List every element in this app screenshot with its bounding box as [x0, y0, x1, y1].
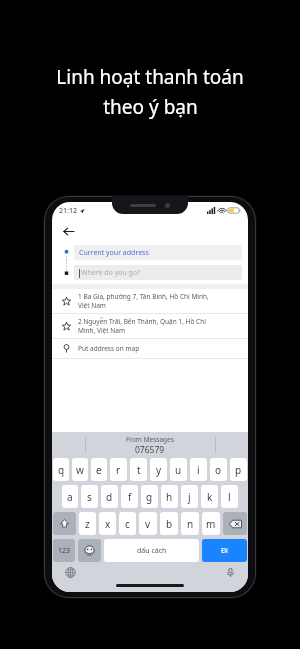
staticText: k — [207, 490, 213, 504]
button[interactable]: h — [161, 485, 178, 508]
button[interactable]: p — [230, 458, 247, 481]
staticText: g — [146, 490, 153, 504]
staticText: h — [166, 490, 173, 504]
staticText: Where do you go? — [81, 268, 141, 278]
button[interactable]: Change keyboard language — [63, 565, 77, 579]
button[interactable]: 123 — [53, 539, 75, 562]
button[interactable]: z — [79, 512, 96, 535]
button[interactable]: w — [72, 458, 88, 481]
staticText: q — [58, 463, 65, 477]
staticText: Minh, Việt Nam — [78, 326, 125, 335]
staticText: 21:12 — [59, 206, 77, 216]
button[interactable]: m — [202, 512, 220, 535]
staticText: l — [228, 490, 231, 504]
staticText: x — [105, 517, 111, 531]
staticText: Linh hoạt thanh toán — [56, 64, 244, 90]
button[interactable]: Shift — [53, 512, 76, 535]
button[interactable]: x — [99, 512, 116, 535]
staticText: o — [215, 463, 222, 477]
button[interactable]: dấu cách — [104, 539, 199, 562]
button[interactable]: Put address on map — [52, 339, 248, 358]
button[interactable]: 2 Nguyễn Trãi, Bến Thành, Quận 1, Hồ Chí — [52, 314, 248, 338]
staticText: 1 Ba Gia, phường 7, Tân Bình, Hồ Chí Min… — [78, 292, 209, 301]
button[interactable]: n — [181, 512, 199, 535]
button[interactable]: o — [210, 458, 227, 481]
staticText: Đi — [221, 546, 228, 556]
staticText: t — [137, 463, 141, 477]
button[interactable]: y — [150, 458, 167, 481]
button[interactable]: g — [141, 485, 158, 508]
staticText: n — [187, 517, 194, 531]
staticText: From Messages — [126, 435, 174, 444]
button[interactable]: r — [110, 458, 127, 481]
staticText: a — [67, 490, 73, 504]
button[interactable]: s — [81, 485, 98, 508]
staticText: d — [106, 490, 113, 504]
staticText: m — [206, 517, 216, 531]
button[interactable]: Back — [60, 223, 76, 239]
button[interactable]: v — [139, 512, 157, 535]
staticText: e — [96, 463, 102, 477]
staticText: 123 — [58, 546, 71, 556]
staticText: i — [197, 463, 200, 477]
button[interactable]: u — [170, 458, 187, 481]
button[interactable]: k — [201, 485, 218, 508]
staticText: Current your address — [79, 248, 149, 258]
staticText: v — [145, 517, 151, 531]
button[interactable]: 1 Ba Gia, phường 7, Tân Bình, Hồ Chí Min… — [52, 289, 248, 313]
button[interactable]: i — [190, 458, 207, 481]
staticText: j — [188, 490, 191, 504]
button[interactable]: f — [121, 485, 138, 508]
staticText: y — [156, 463, 162, 477]
button[interactable]: j — [181, 485, 198, 508]
staticText: c — [125, 517, 130, 531]
staticText: z — [85, 517, 90, 531]
staticText: r — [116, 463, 121, 477]
button[interactable]: Backspace — [223, 512, 247, 535]
staticText: dấu cách — [137, 546, 167, 556]
staticText: 2 Nguyễn Trãi, Bến Thành, Quận 1, Hồ Chí — [78, 317, 206, 326]
button[interactable]: Emoji — [78, 539, 101, 562]
button[interactable]: Đi — [202, 539, 247, 562]
button[interactable]: d — [101, 485, 118, 508]
button[interactable]: e — [91, 458, 107, 481]
button[interactable]: l — [221, 485, 238, 508]
staticText: w — [76, 463, 84, 477]
button[interactable]: Dictate — [223, 565, 237, 579]
staticText: b — [166, 517, 173, 531]
staticText: u — [175, 463, 182, 477]
staticText: f — [128, 490, 132, 504]
button[interactable]: t — [130, 458, 147, 481]
button[interactable]: a — [62, 485, 78, 508]
staticText: p — [235, 463, 242, 477]
staticText: theo ý bạn — [103, 94, 198, 120]
button[interactable]: q — [53, 458, 69, 481]
button[interactable]: Where do you go? — [74, 265, 242, 280]
staticText: s — [87, 490, 92, 504]
staticText: 076579 — [135, 444, 165, 456]
staticText: Put address on map — [78, 344, 140, 353]
button[interactable]: c — [119, 512, 136, 535]
button[interactable]: b — [160, 512, 178, 535]
button[interactable]: Current your address — [74, 245, 242, 260]
staticText: Việt Nam — [78, 301, 106, 310]
